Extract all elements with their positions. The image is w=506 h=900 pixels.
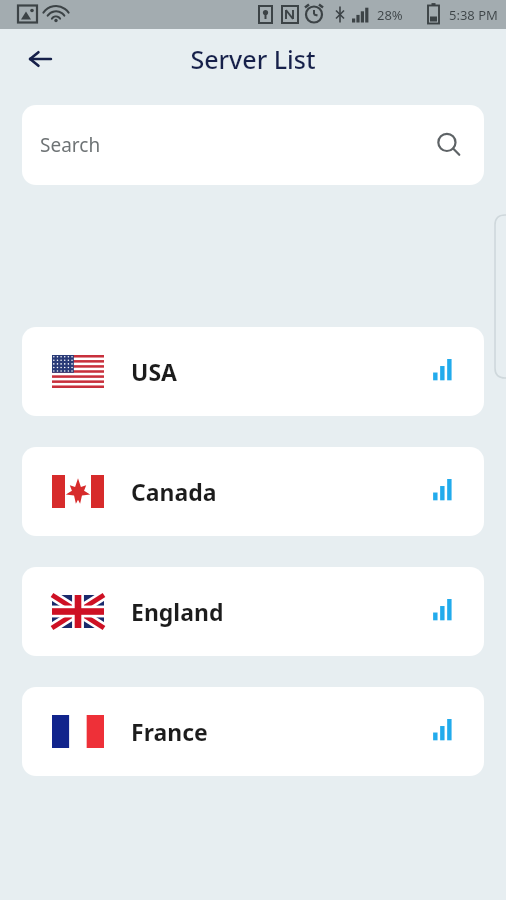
staticText: Canada	[131, 476, 217, 507]
other: Signal strength	[430, 479, 456, 505]
other: Signal strength	[430, 599, 456, 625]
button[interactable]: Search	[22, 105, 484, 185]
staticText: England	[131, 596, 224, 627]
staticText: USA	[131, 356, 177, 387]
staticText: France	[131, 716, 208, 747]
other: Signal strength	[430, 719, 456, 745]
other: Signal strength	[430, 359, 456, 385]
staticText: Search	[40, 132, 101, 158]
button[interactable]: England	[22, 567, 484, 656]
staticText: 28%	[377, 6, 403, 24]
staticText: 5:38 PM	[449, 6, 498, 24]
button[interactable]: France	[22, 687, 484, 776]
button[interactable]: Back	[16, 35, 64, 83]
staticText: Server List	[190, 42, 316, 76]
button[interactable]: Canada	[22, 447, 484, 536]
button[interactable]: USA	[22, 327, 484, 416]
